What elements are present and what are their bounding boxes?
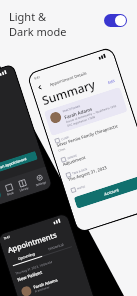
button[interactable]: Dark mode toggle: [104, 14, 127, 27]
staticText: NOTES: [77, 184, 86, 191]
button[interactable]: Upcoming: [10, 249, 42, 266]
staticText: Practitioner: [34, 285, 51, 294]
button[interactable]: PRACTITIONER: [44, 87, 128, 136]
staticText: Farah Adams: [33, 277, 58, 290]
staticText: Appointment Details: [49, 70, 88, 87]
button[interactable]: Historical: [40, 239, 72, 257]
staticText: Farah Adams: [64, 105, 93, 120]
staticText: Library: [19, 186, 30, 192]
button[interactable]: Book: [3, 182, 16, 199]
button[interactable]: Farah Adams: [20, 269, 82, 296]
button[interactable]: Add appointment: [0, 186, 3, 204]
staticText: Thu Aug 31 2023, 10:00 AM: [15, 260, 53, 276]
staticText: Historical: [48, 242, 64, 251]
staticText: Silver Fernie Family Chiropractic: [56, 123, 119, 149]
staticText: Book: [7, 190, 15, 196]
staticText: PRACTITIONER: [62, 104, 81, 113]
staticText: Clinic: [58, 146, 67, 153]
staticText: 9:41: [3, 235, 11, 241]
staticText: SERVICE: [67, 153, 77, 160]
staticText: Light &: [9, 9, 47, 24]
staticText: TIME & DATE: [72, 167, 88, 175]
staticText: CLINIC: [60, 135, 70, 141]
button[interactable]: Library: [15, 177, 31, 195]
staticText: Settings: [35, 180, 47, 187]
staticText: GCC registration 17308: [67, 115, 96, 128]
button[interactable]: Settings: [31, 171, 48, 189]
staticText: Doctor of Osteopathy — Qualified in 1992: [65, 104, 117, 124]
button[interactable]: Edit: [107, 78, 116, 85]
button[interactable]: Book an appointment: [0, 151, 38, 177]
staticText: Upcoming: [17, 251, 36, 261]
button[interactable]: Back: [36, 84, 44, 91]
staticText: Account: [103, 187, 120, 197]
button[interactable]: Account: [74, 174, 137, 209]
staticText: Dark mode: [9, 24, 67, 39]
staticText: Summary: [40, 75, 98, 108]
staticText: New Patient: [16, 269, 43, 282]
staticText: Thu August 31, 2023: [67, 165, 108, 183]
staticText: Appointments: [6, 229, 59, 255]
staticText: Book an appointment: [0, 156, 28, 172]
staticText: 9:41: [33, 75, 41, 81]
staticText: Adjustment: [62, 155, 87, 168]
